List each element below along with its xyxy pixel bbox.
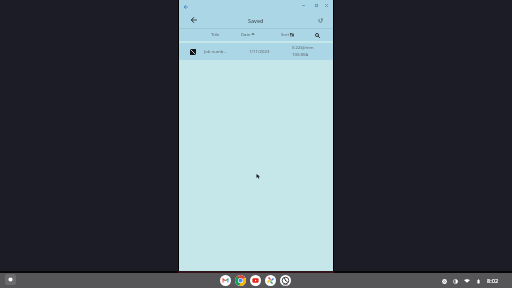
button[interactable]: Title — [211, 32, 220, 38]
button[interactable]: Date — [241, 32, 255, 38]
button[interactable]: Minimize — [298, 0, 309, 11]
staticText: Saved — [248, 17, 264, 24]
staticText: 1/11/2023 — [249, 48, 270, 54]
button[interactable]: System status — [442, 277, 499, 285]
button[interactable]: YouTube — [250, 275, 261, 286]
staticText: 8:02 — [487, 277, 499, 285]
button[interactable]: Gmail — [220, 275, 231, 286]
button[interactable]: Back — [180, 1, 191, 12]
button[interactable]: Chrome — [235, 275, 246, 286]
staticText: Sort — [281, 32, 290, 38]
button[interactable]: Refresh — [314, 14, 327, 27]
button[interactable]: Google Photos — [265, 275, 276, 286]
button[interactable]: Navigate up — [187, 13, 201, 27]
button[interactable]: Clock — [280, 275, 291, 286]
staticText: 100.80A — [292, 51, 309, 57]
button[interactable]: Job numb... — [179, 43, 333, 60]
button[interactable]: Search — [311, 29, 323, 41]
staticText: Job numb... — [204, 48, 227, 54]
button[interactable]: Close — [321, 0, 332, 11]
staticText: 0.22kJ/mm — [292, 44, 314, 50]
button[interactable]: Launcher — [5, 274, 16, 285]
button[interactable]: Maximize — [311, 0, 322, 11]
staticText: Date — [241, 32, 251, 38]
button[interactable]: Sort — [281, 32, 294, 38]
